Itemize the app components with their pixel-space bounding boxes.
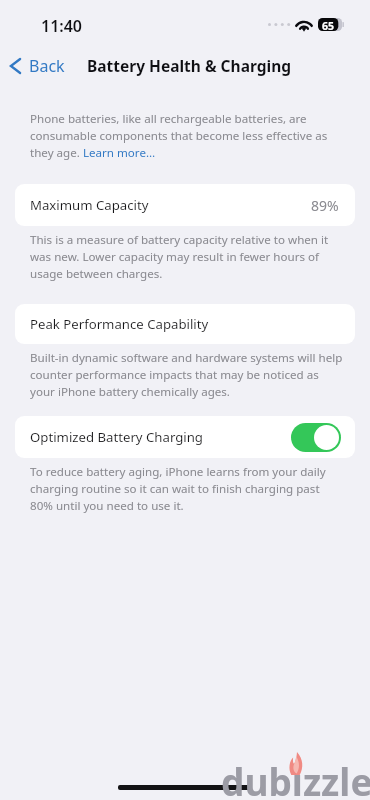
button[interactable]: Optimized Battery Charging toggle [291,423,341,452]
staticText: 89% [311,196,339,215]
staticText: 65 [322,19,335,33]
staticText: Built-in dynamic software and hardware s… [30,350,343,400]
staticText: Optimized Battery Charging [30,428,203,446]
staticText: Peak Performance Capability [30,315,209,333]
staticText: dubizzle [221,756,370,800]
button[interactable]: Optimized Battery Charging [15,416,355,458]
staticText: Back [29,55,65,77]
staticText: This is a measure of battery capacity re… [30,232,343,282]
staticText: To reduce battery aging, iPhone learns f… [30,464,343,514]
staticText: Maximum Capacity [30,196,149,214]
staticText: 11:40 [41,15,83,37]
staticText: Battery Health & Charging [87,55,291,76]
staticText: Phone batteries, like all rechargeable b… [30,111,343,161]
button[interactable]: Maximum Capacity [15,184,355,226]
button[interactable]: Peak Performance Capability [15,304,355,344]
button[interactable]: Back [5,52,70,80]
